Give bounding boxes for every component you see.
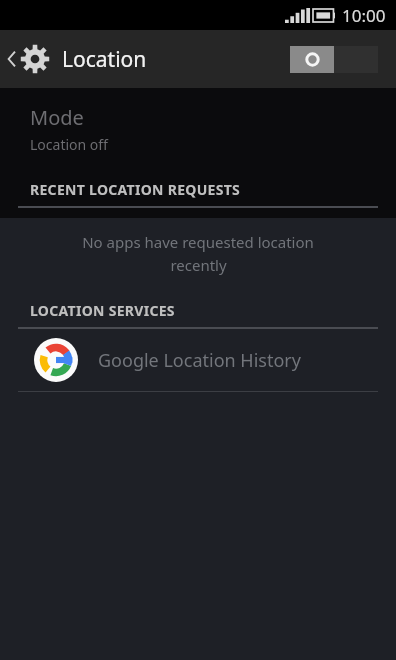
staticText: LOCATION SERVICES bbox=[30, 301, 175, 320]
staticText: Location bbox=[62, 45, 147, 74]
button[interactable]: Location toggle, off bbox=[290, 46, 378, 73]
staticText: Location off bbox=[30, 135, 108, 154]
staticText: Google Location History bbox=[98, 348, 301, 373]
staticText: 10:00 bbox=[342, 4, 386, 27]
staticText: No apps have requested location bbox=[82, 232, 314, 252]
staticText: recently bbox=[170, 255, 227, 275]
staticText: Mode bbox=[30, 104, 84, 131]
button[interactable]: Mode bbox=[0, 88, 396, 164]
other: Back bbox=[6, 48, 18, 70]
button[interactable]: Google Location History bbox=[0, 329, 396, 391]
button[interactable]: Back bbox=[0, 44, 157, 74]
staticText: RECENT LOCATION REQUESTS bbox=[30, 180, 241, 199]
